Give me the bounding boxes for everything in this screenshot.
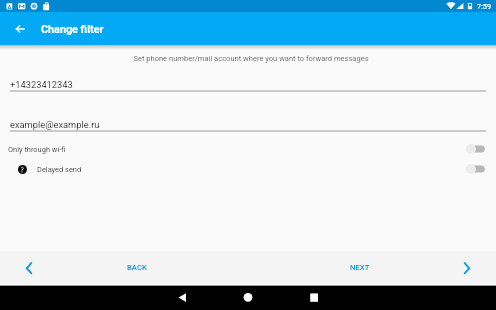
button[interactable]: Delayed send [0,159,496,179]
staticText: +14323412343 [10,79,73,90]
button[interactable]: BACK [127,263,147,272]
staticText: Only through wi-fi [8,145,66,154]
button[interactable]: Back [6,15,34,43]
button[interactable]: NEXT [350,263,370,272]
staticText: Change filter [41,23,104,36]
button[interactable]: Next [458,259,476,277]
staticText: 7:59 [477,2,492,11]
staticText: example@example.ru [10,119,100,130]
staticText: Set phone number/mail account where you … [3,54,496,63]
button[interactable]: Only through wi-fi [0,139,496,159]
staticText: Delayed send [37,165,82,174]
button[interactable]: Previous [20,259,38,277]
